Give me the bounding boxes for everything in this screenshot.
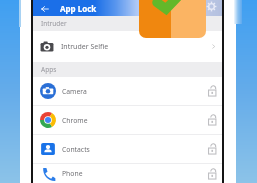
staticText: Intruder Selfie bbox=[61, 42, 109, 52]
button[interactable]: Back bbox=[38, 2, 51, 15]
button[interactable]: Camera bbox=[33, 77, 223, 105]
staticText: Chrome bbox=[62, 116, 88, 125]
button[interactable]: Contacts bbox=[33, 135, 223, 163]
button[interactable]: Settings bbox=[206, 1, 216, 11]
button[interactable]: Chrome bbox=[33, 106, 223, 134]
button[interactable]: Phone bbox=[33, 164, 223, 183]
staticText: App Lock bbox=[60, 3, 97, 14]
staticText: Apps bbox=[41, 65, 57, 74]
button[interactable]: Intruder Selfie bbox=[33, 31, 223, 62]
staticText: Contacts bbox=[62, 145, 90, 154]
staticText: Phone bbox=[62, 169, 83, 178]
staticText: Camera bbox=[62, 87, 87, 96]
staticText: Intruder bbox=[41, 19, 67, 28]
